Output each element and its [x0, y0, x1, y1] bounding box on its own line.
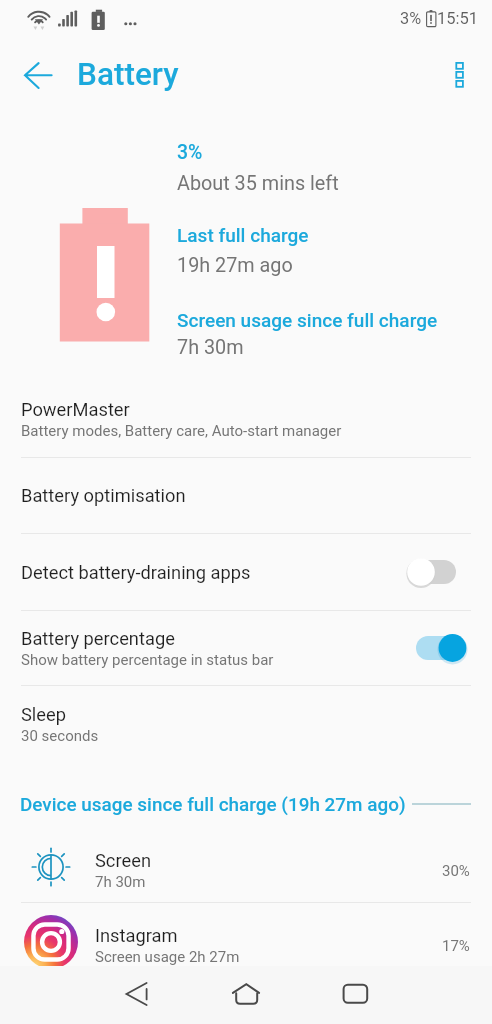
staticText: 30 seconds	[21, 727, 99, 745]
staticText: Device usage since full charge (19h 27m …	[20, 793, 406, 815]
button[interactable]: Detect battery-draining apps	[0, 534, 492, 610]
button[interactable]	[416, 555, 472, 589]
staticText: Detect battery-draining apps	[21, 562, 251, 583]
button[interactable]: Back	[110, 968, 162, 1020]
staticText: 7h 30m	[177, 336, 244, 359]
staticText: 3%	[177, 141, 203, 164]
staticText: Screen usage 2h 27m	[95, 948, 240, 966]
button[interactable]: Recent apps	[330, 968, 382, 1020]
staticText: Battery optimisation	[21, 485, 186, 506]
staticText: 17%	[442, 937, 470, 955]
staticText: 7h 30m	[95, 873, 146, 891]
staticText: Battery modes, Battery care, Auto-start …	[21, 422, 342, 440]
staticText: Screen	[95, 850, 151, 871]
button[interactable]: Sleep	[0, 686, 492, 762]
staticText: Battery percentage	[21, 628, 175, 649]
staticText: Sleep	[21, 704, 66, 725]
staticText: Screen usage since full charge	[177, 309, 438, 331]
staticText: Battery	[77, 56, 179, 93]
button[interactable]: More options	[442, 52, 478, 88]
button[interactable]: PowerMaster	[0, 381, 492, 457]
staticText: 30%	[442, 862, 470, 880]
button[interactable]: Back	[10, 52, 56, 98]
staticText: Last full charge	[177, 224, 309, 246]
button[interactable]: Instagram	[0, 903, 492, 977]
button[interactable]: Home	[220, 968, 272, 1020]
staticText: Instagram	[95, 925, 178, 946]
staticText: Show battery percentage in status bar	[21, 651, 274, 669]
button[interactable]: Screen	[0, 828, 492, 902]
button[interactable]: Battery percentage	[0, 611, 492, 685]
staticText: 15:51	[437, 9, 479, 28]
button[interactable]: Battery optimisation	[0, 458, 492, 533]
staticText: About 35 mins left	[177, 172, 339, 195]
staticText: PowerMaster	[21, 399, 130, 420]
button[interactable]	[416, 631, 472, 665]
staticText: 19h 27m ago	[177, 254, 293, 277]
staticText: 3%	[400, 9, 422, 28]
